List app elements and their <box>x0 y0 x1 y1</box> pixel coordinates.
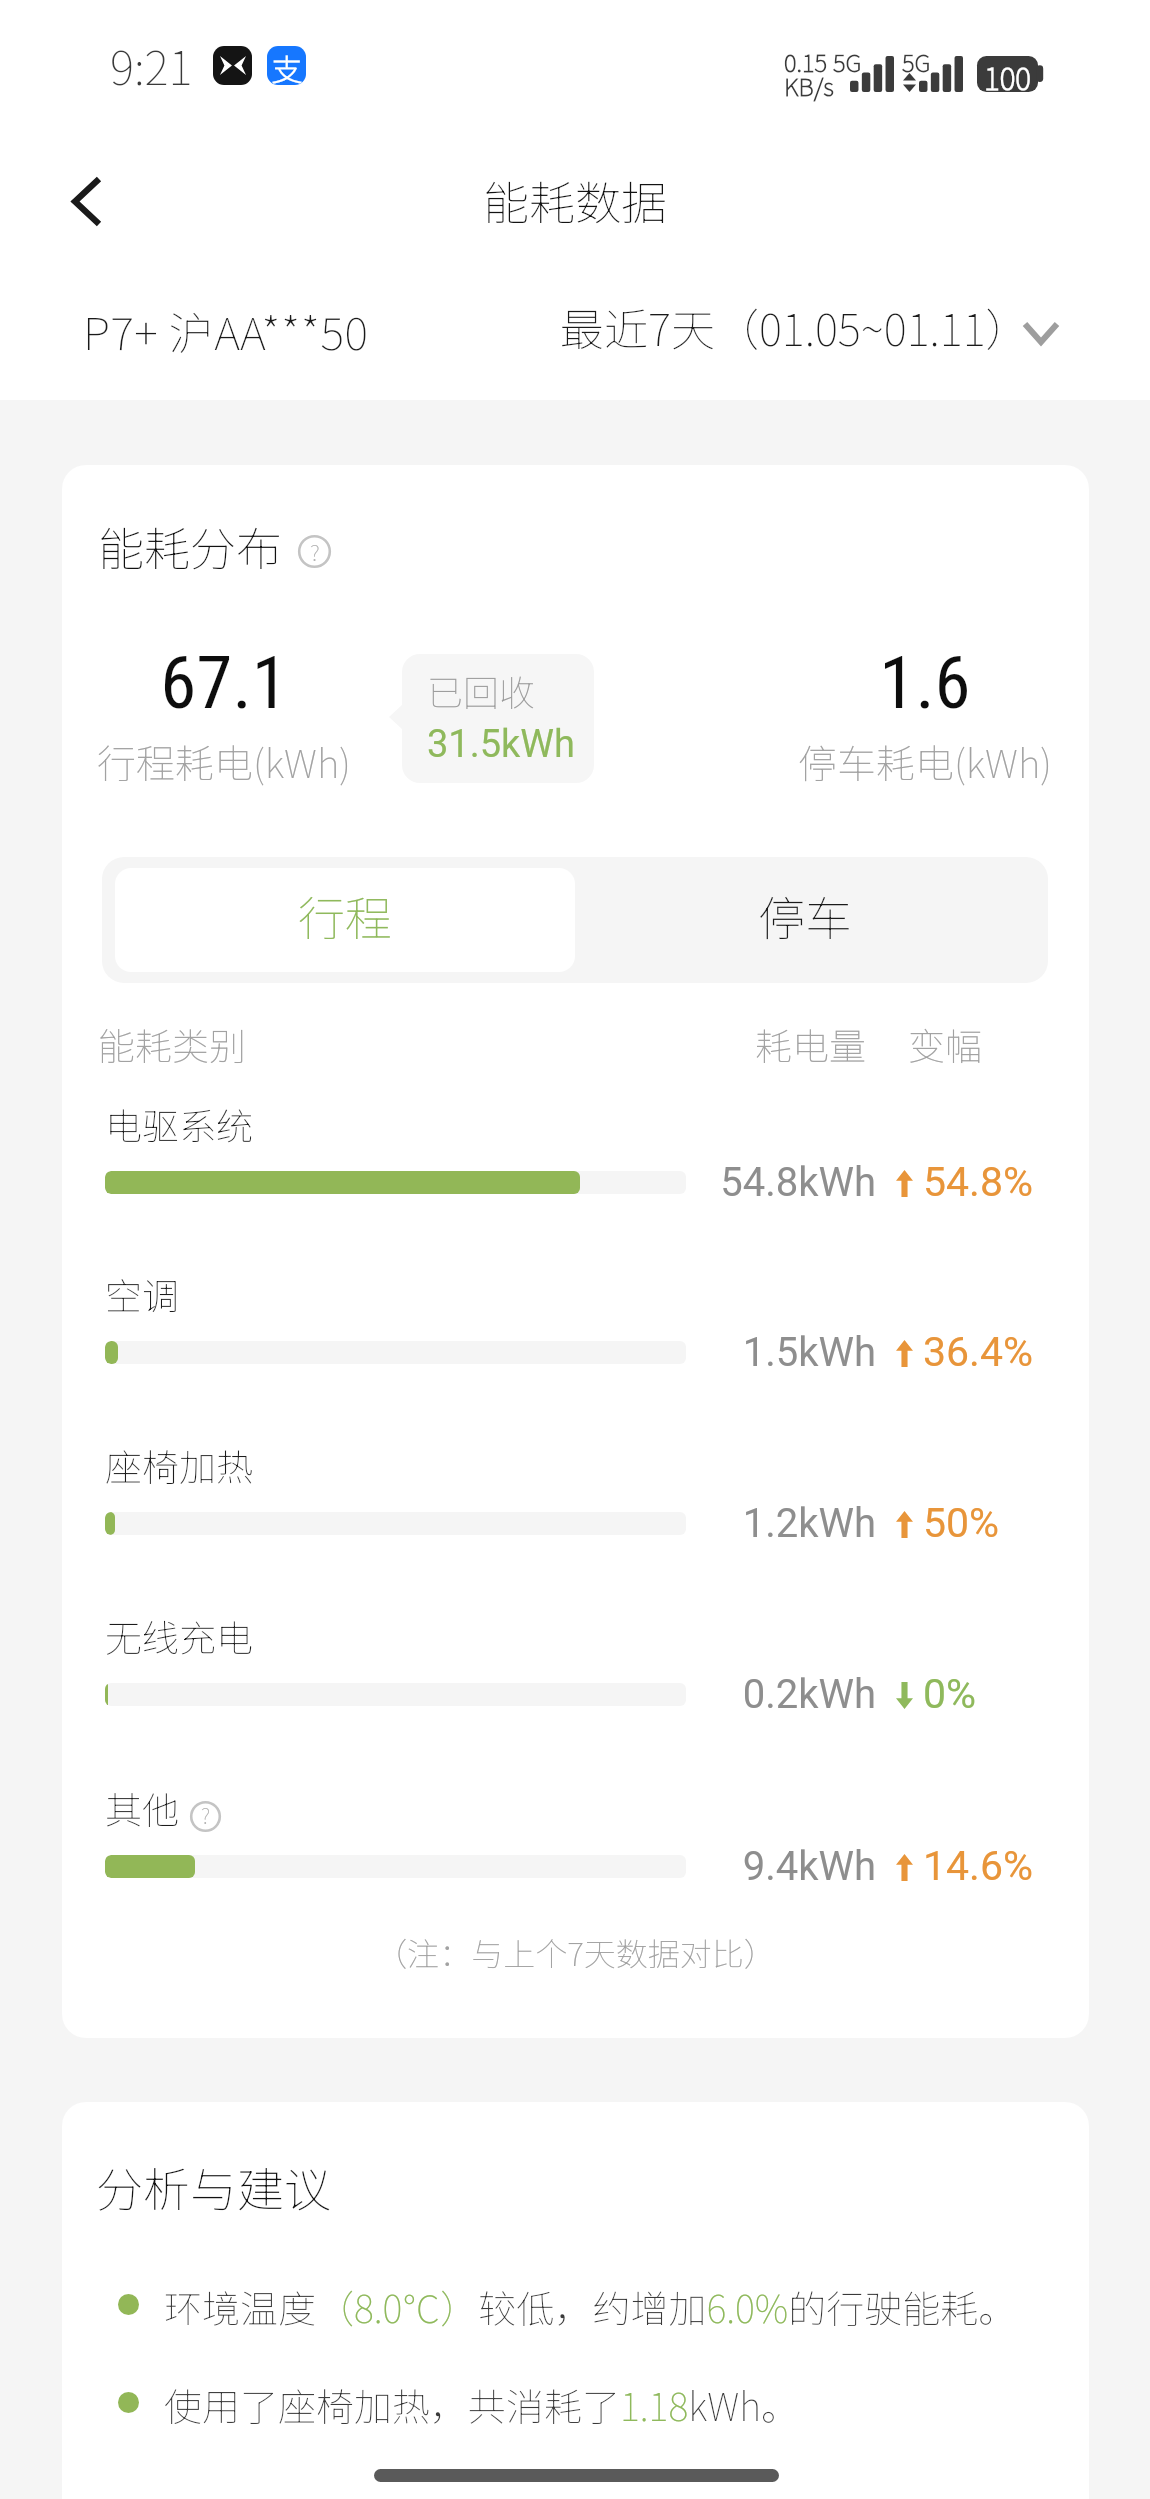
staticText: 36.4% <box>923 1328 1033 1376</box>
staticText: 行程耗电(kWh) <box>62 733 424 789</box>
staticText: 最近7天（01.05~01.11） <box>560 295 1030 359</box>
staticText: 能耗分布 <box>98 513 282 573</box>
staticText: 54.8% <box>923 1158 1033 1206</box>
staticText: 其他 <box>105 1781 179 1835</box>
staticText: 67.1 <box>62 640 424 726</box>
staticText: 耗电量 <box>755 1017 866 1069</box>
staticText: 54.8kWh <box>576 1159 876 1206</box>
staticText: 5G <box>833 44 862 79</box>
staticText: 100 <box>984 55 1031 91</box>
staticText: 1.2kWh <box>576 1500 876 1547</box>
staticText: 座椅加热 <box>105 1438 253 1492</box>
staticText: KB/s <box>784 68 834 103</box>
staticText: 31.5kWh <box>427 722 592 767</box>
button[interactable]: P7+ 沪AA***50 <box>83 298 369 363</box>
staticText: 1.6 <box>725 640 1089 726</box>
staticText: 能耗数据 <box>483 167 667 234</box>
staticText: 能耗类别 <box>98 1017 246 1069</box>
staticText: 9.4kWh <box>576 1843 876 1890</box>
button[interactable]: 最近7天（01.05~01.11） <box>560 295 1068 359</box>
staticText: 已回收 <box>427 664 587 716</box>
staticText: 变幅 <box>908 1017 982 1069</box>
staticText: 无线充电 <box>105 1609 253 1663</box>
button[interactable]: Back <box>43 155 133 245</box>
button[interactable]: 行程 <box>115 868 575 972</box>
staticText: 分析与建议 <box>96 2152 331 2220</box>
staticText: 环境温度（8.0℃）较低，约增加6.0%的行驶能耗。 <box>164 2279 1017 2334</box>
staticText: 停车耗电(kWh) <box>725 733 1089 789</box>
staticText: 0% <box>923 1670 977 1718</box>
staticText: 1.5kWh <box>576 1329 876 1376</box>
staticText: 支 <box>272 46 302 85</box>
staticText: 电驱系统 <box>105 1097 253 1151</box>
staticText: （注：与上个7天数据对比） <box>62 1929 1089 1975</box>
staticText: ? <box>201 1800 211 1831</box>
button[interactable]: 停车 <box>575 868 1035 972</box>
staticText: 停车 <box>758 881 852 949</box>
staticText: 0.2kWh <box>576 1671 876 1718</box>
staticText: 空调 <box>105 1267 179 1321</box>
staticText: 使用了座椅加热，共消耗了1.18kWh。 <box>164 2377 799 2432</box>
staticText: 9:21 <box>110 32 193 99</box>
staticText: 5G <box>902 44 931 79</box>
staticText: ? <box>310 535 320 567</box>
staticText: 14.6% <box>923 1842 1033 1890</box>
staticText: 行程 <box>298 881 392 949</box>
staticText: 0.15 <box>784 44 828 79</box>
staticText: 50% <box>923 1499 1000 1547</box>
